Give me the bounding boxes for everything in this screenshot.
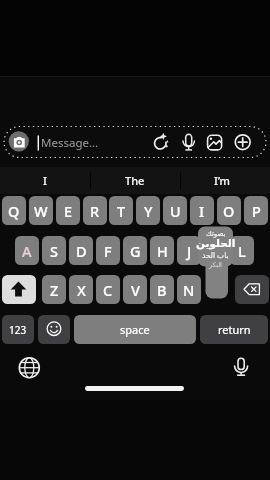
staticText: G bbox=[130, 241, 141, 261]
staticText: C bbox=[103, 280, 113, 300]
button[interactable] bbox=[2, 275, 36, 304]
staticText: 123 bbox=[9, 323, 27, 337]
staticText: بصوتك bbox=[206, 230, 226, 238]
staticText: I’m bbox=[214, 173, 231, 188]
staticText: O bbox=[223, 201, 235, 221]
staticText: R bbox=[90, 201, 100, 221]
staticText: P bbox=[252, 201, 261, 221]
button[interactable]: space bbox=[74, 315, 196, 344]
button[interactable]: I bbox=[190, 196, 214, 225]
staticText: H bbox=[157, 241, 168, 261]
staticText: K bbox=[211, 241, 221, 261]
staticText: D bbox=[76, 241, 87, 261]
button[interactable] bbox=[235, 275, 269, 304]
button[interactable]: Q bbox=[2, 196, 26, 225]
button[interactable] bbox=[38, 315, 70, 344]
button[interactable]: O bbox=[217, 196, 241, 225]
staticText: V bbox=[131, 280, 140, 300]
staticText: Q bbox=[8, 201, 20, 221]
button[interactable]: The bbox=[90, 167, 180, 193]
button[interactable]: 123 bbox=[2, 315, 34, 344]
staticText: باب الحد bbox=[202, 250, 229, 260]
button[interactable]: I’m bbox=[180, 167, 265, 193]
button[interactable]: Z bbox=[42, 275, 66, 304]
staticText: Z bbox=[50, 280, 59, 300]
button[interactable]: V bbox=[123, 275, 147, 304]
button[interactable]: T bbox=[109, 196, 133, 225]
button[interactable]: G bbox=[123, 236, 147, 265]
staticText: E bbox=[64, 201, 73, 221]
button[interactable]: S bbox=[42, 236, 66, 265]
button[interactable]: W bbox=[29, 196, 53, 225]
button[interactable]: R bbox=[83, 196, 107, 225]
button[interactable]: F bbox=[96, 236, 120, 265]
staticText: N bbox=[183, 280, 195, 300]
staticText: البكر bbox=[209, 261, 222, 269]
button[interactable]: X bbox=[69, 275, 93, 304]
staticText: return bbox=[218, 322, 251, 337]
staticText: I bbox=[43, 173, 47, 188]
staticText: الحلوين bbox=[196, 237, 236, 249]
staticText: L bbox=[238, 241, 246, 261]
button[interactable]: Y bbox=[136, 196, 160, 225]
button[interactable]: I bbox=[0, 167, 90, 193]
button[interactable]: J bbox=[177, 236, 201, 265]
button[interactable] bbox=[4, 127, 266, 158]
staticText: F bbox=[104, 241, 112, 261]
staticText: S bbox=[50, 241, 58, 261]
button[interactable]: K bbox=[204, 236, 228, 265]
button[interactable]: N bbox=[177, 275, 201, 304]
staticText: The bbox=[125, 173, 145, 188]
staticText: A bbox=[22, 241, 32, 261]
button[interactable]: B bbox=[150, 275, 174, 304]
staticText: J bbox=[187, 241, 192, 261]
staticText: Message... bbox=[41, 135, 99, 151]
button[interactable]: P bbox=[244, 196, 268, 225]
staticText: U bbox=[170, 201, 181, 221]
staticText: T bbox=[117, 201, 126, 221]
button[interactable]: U bbox=[163, 196, 187, 225]
button[interactable]: D bbox=[69, 236, 93, 265]
button[interactable]: H bbox=[150, 236, 174, 265]
staticText: Y bbox=[144, 201, 153, 221]
staticText: X bbox=[77, 280, 86, 300]
button[interactable]: return bbox=[200, 315, 268, 344]
staticText: space bbox=[120, 322, 150, 337]
staticText: W bbox=[34, 201, 48, 221]
staticText: B bbox=[157, 280, 167, 300]
button[interactable]: E bbox=[56, 196, 80, 225]
button[interactable]: A bbox=[15, 236, 39, 265]
button[interactable]: C bbox=[96, 275, 120, 304]
button[interactable]: L bbox=[230, 236, 254, 265]
staticText: I bbox=[199, 201, 205, 221]
